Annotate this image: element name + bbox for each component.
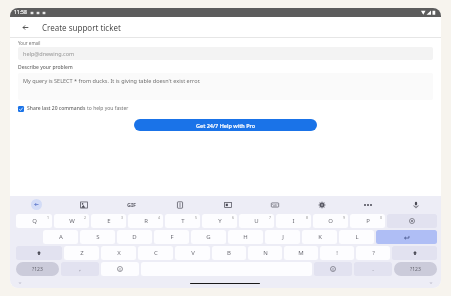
button[interactable]: ! <box>320 246 354 260</box>
button[interactable]: ?123 <box>394 262 437 276</box>
staticText: F <box>170 233 174 241</box>
button[interactable]: Back <box>16 279 24 287</box>
button[interactable]: help@dnewing.com <box>18 47 433 60</box>
staticText: S <box>96 233 100 241</box>
button[interactable]: Settings <box>298 196 345 213</box>
staticText: L <box>355 233 359 241</box>
staticText: 7 <box>269 215 272 220</box>
staticText: help@dnewing.com <box>23 50 75 57</box>
button[interactable]: K <box>302 230 337 244</box>
staticText: N <box>263 249 268 257</box>
button[interactable]: H <box>228 230 263 244</box>
button[interactable]: Language <box>314 262 352 276</box>
button[interactable]: Image <box>60 196 108 213</box>
button[interactable]: More options <box>345 204 392 206</box>
button[interactable]: Z <box>64 246 99 260</box>
button[interactable]: U <box>239 214 274 228</box>
button[interactable]: E <box>91 214 126 228</box>
staticText: M <box>298 249 304 257</box>
staticText: ? <box>372 249 375 257</box>
button[interactable]: Shift <box>16 246 62 260</box>
staticText: E <box>107 217 111 225</box>
staticText: 1 <box>47 215 50 220</box>
button[interactable]: B <box>212 246 246 260</box>
button[interactable]: GIF <box>108 201 156 208</box>
staticText: Get 24/7 Help with Pro <box>196 122 256 129</box>
button[interactable]: Shift <box>392 246 437 260</box>
button[interactable]: Clipboard <box>156 196 204 213</box>
button[interactable]: Q <box>16 214 52 228</box>
button[interactable]: R <box>128 214 163 228</box>
button[interactable]: A <box>43 230 78 244</box>
staticText: 11:58 <box>14 9 27 16</box>
staticText: . <box>372 265 374 273</box>
button[interactable]: S <box>80 230 115 244</box>
staticText: Z <box>80 249 84 257</box>
staticText: X <box>117 249 121 257</box>
staticText: ?123 <box>410 266 421 273</box>
button[interactable]: ? <box>356 246 390 260</box>
staticText: 9 <box>343 215 346 220</box>
button[interactable]: J <box>265 230 300 244</box>
staticText: W <box>69 217 75 225</box>
staticText: , <box>79 265 81 273</box>
button[interactable]: Share last 20 commands <box>18 105 129 112</box>
staticText: 0 <box>380 215 383 220</box>
button[interactable]: Keyboard mode <box>251 196 298 213</box>
staticText: 3 <box>121 215 124 220</box>
button[interactable]: Voice input <box>392 196 439 213</box>
staticText: D <box>132 233 137 241</box>
staticText: V <box>191 249 195 257</box>
button[interactable]: Sticker <box>204 196 251 213</box>
button[interactable]: V <box>175 246 210 260</box>
staticText: GIF <box>127 201 137 208</box>
staticText: 4 <box>158 215 161 220</box>
staticText: ! <box>336 249 338 257</box>
staticText: Create support ticket <box>42 22 121 33</box>
button[interactable]: Get 24/7 Help with Pro <box>134 119 317 131</box>
button[interactable]: C <box>138 246 173 260</box>
button[interactable]: F <box>154 230 189 244</box>
staticText: R <box>144 217 148 225</box>
staticText: A <box>59 233 63 241</box>
button[interactable]: D <box>117 230 152 244</box>
staticText: H <box>243 233 248 241</box>
staticText: B <box>227 249 231 257</box>
button[interactable]: T <box>165 214 200 228</box>
staticText: J <box>282 233 284 241</box>
button[interactable]: ?123 <box>16 262 59 276</box>
button[interactable]: Enter <box>376 230 437 244</box>
staticText: Q <box>32 217 37 225</box>
button[interactable]: O <box>313 214 348 228</box>
button[interactable]: I <box>276 214 311 228</box>
button[interactable]: X <box>101 246 136 260</box>
staticText: I <box>292 217 295 225</box>
staticText: Your email <box>18 40 41 46</box>
staticText: My query is SELECT * from ducks. It is g… <box>23 77 201 84</box>
staticText: 5 <box>195 215 198 220</box>
button[interactable]: M <box>284 246 318 260</box>
staticText: C <box>154 249 158 257</box>
button[interactable]: Hide keyboard <box>427 279 435 287</box>
staticText: U <box>254 217 259 225</box>
button[interactable]: N <box>248 246 282 260</box>
staticText: 6 <box>232 215 235 220</box>
button[interactable]: P <box>350 214 385 228</box>
button[interactable]: Back <box>18 20 32 34</box>
button[interactable]: Collapse toolbar <box>31 199 42 210</box>
staticText: K <box>318 233 322 241</box>
button[interactable]: Backspace <box>387 214 437 228</box>
button[interactable]: L <box>339 230 374 244</box>
staticText: 2 <box>84 215 87 220</box>
button[interactable]: Emoji <box>101 262 139 276</box>
button[interactable]: Y <box>202 214 237 228</box>
button[interactable]: My query is SELECT * from ducks. It is g… <box>18 73 433 100</box>
button[interactable]: G <box>191 230 226 244</box>
button[interactable]: W <box>54 214 89 228</box>
staticText: G <box>206 233 211 241</box>
staticText: O <box>328 217 333 225</box>
staticText: Describe your problem <box>18 64 73 71</box>
